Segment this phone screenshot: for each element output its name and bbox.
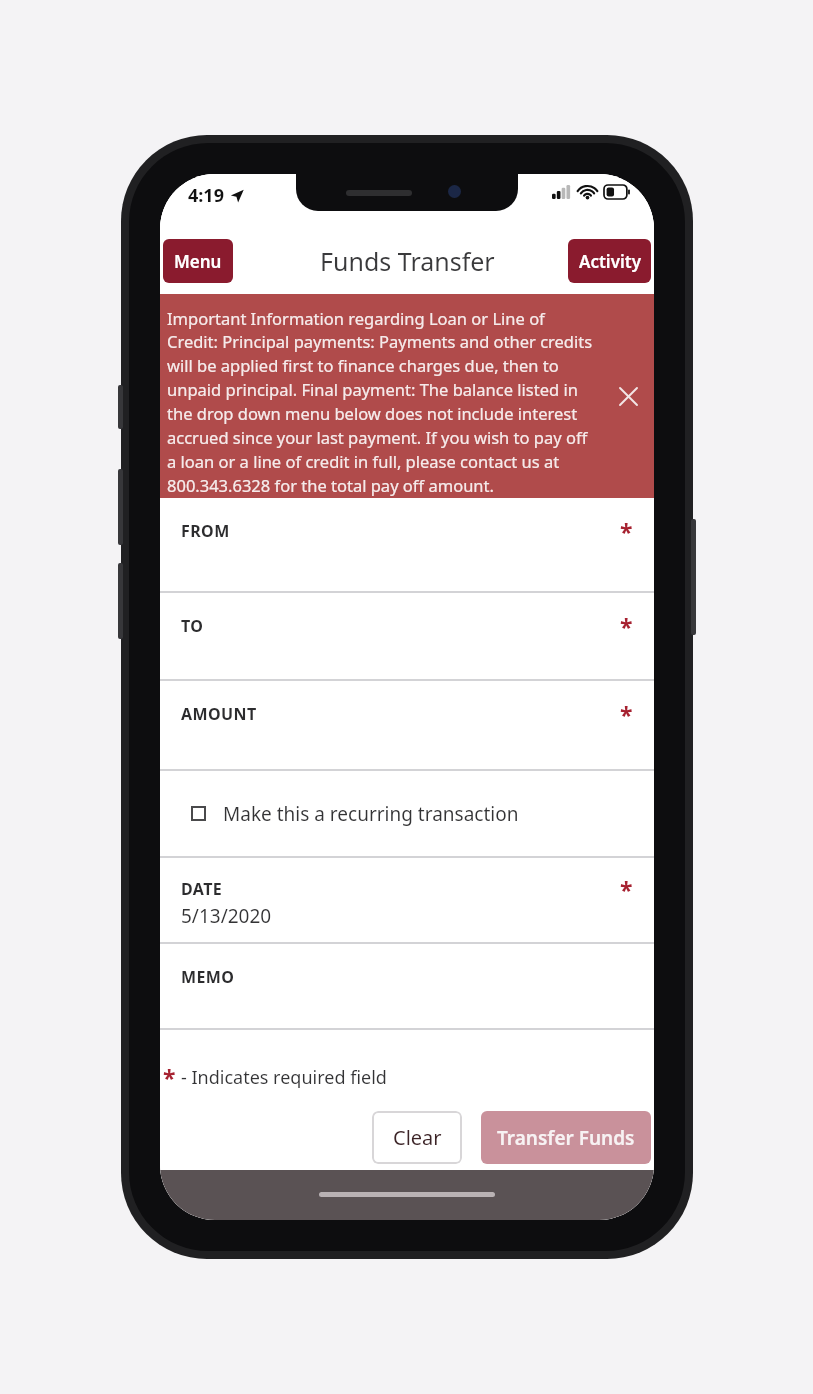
- staticText: *: [620, 699, 633, 730]
- button[interactable]: Dismiss: [606, 374, 650, 418]
- staticText: - Indicates required field: [181, 1065, 387, 1090]
- staticText: Clear: [393, 1124, 442, 1151]
- staticText: FROM: [181, 520, 230, 542]
- staticText: Make this a recurring transaction: [223, 801, 519, 827]
- button[interactable]: DATE: [160, 858, 654, 942]
- staticText: *: [163, 1062, 176, 1093]
- staticText: Activity: [579, 250, 641, 273]
- button[interactable]: Make this a recurring transaction: [160, 771, 654, 856]
- button[interactable]: MEMO: [160, 944, 654, 1028]
- staticText: 5/13/2020: [181, 903, 272, 929]
- staticText: AMOUNT: [181, 703, 257, 725]
- staticText: DATE: [181, 878, 223, 900]
- staticText: TO: [181, 615, 204, 637]
- staticText: 4:19: [188, 183, 224, 208]
- button[interactable]: FROM: [160, 498, 654, 591]
- staticText: *: [620, 874, 633, 905]
- button[interactable]: TO: [160, 593, 654, 679]
- staticText: Funds Transfer: [320, 244, 495, 278]
- button[interactable]: AMOUNT: [160, 681, 654, 769]
- button[interactable]: Transfer Funds: [481, 1111, 651, 1164]
- staticText: Transfer Funds: [497, 1125, 635, 1151]
- staticText: Important Information regarding Loan or …: [167, 307, 600, 497]
- staticText: Menu: [174, 250, 222, 273]
- button[interactable]: Activity: [568, 239, 651, 283]
- button[interactable]: Menu: [163, 239, 233, 283]
- staticText: *: [620, 516, 633, 547]
- staticText: *: [620, 611, 633, 642]
- button[interactable]: Clear: [372, 1111, 462, 1164]
- staticText: MEMO: [181, 966, 235, 988]
